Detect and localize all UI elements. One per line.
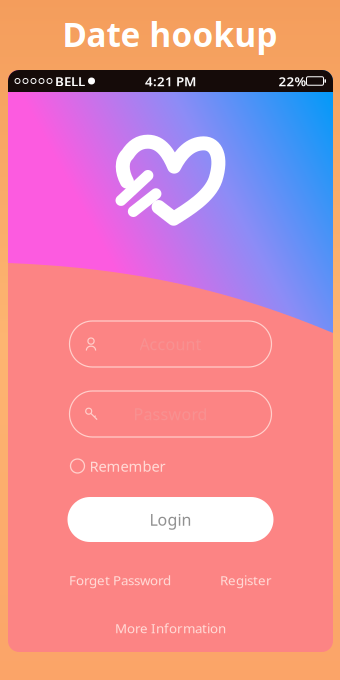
staticText: Account bbox=[139, 333, 201, 355]
staticText: Forget Password bbox=[69, 571, 171, 589]
staticText: Remember bbox=[89, 456, 165, 476]
staticText: 4:21 PM bbox=[145, 72, 196, 90]
staticText: BELL bbox=[55, 72, 85, 90]
staticText: Date hookup bbox=[62, 12, 277, 56]
staticText: More Information bbox=[115, 619, 226, 637]
button[interactable]: Forget Password bbox=[69, 573, 171, 587]
staticText: Password bbox=[133, 403, 207, 425]
button[interactable]: Login bbox=[67, 497, 273, 542]
button[interactable]: Register bbox=[220, 573, 272, 587]
staticText: 22% bbox=[278, 72, 306, 90]
button[interactable]: More Information bbox=[115, 621, 226, 635]
staticText: Register bbox=[220, 571, 272, 589]
staticText: Login bbox=[149, 509, 191, 530]
button[interactable]: Password bbox=[69, 391, 271, 437]
button[interactable]: Account bbox=[69, 321, 271, 367]
button[interactable]: Remember bbox=[70, 458, 270, 474]
